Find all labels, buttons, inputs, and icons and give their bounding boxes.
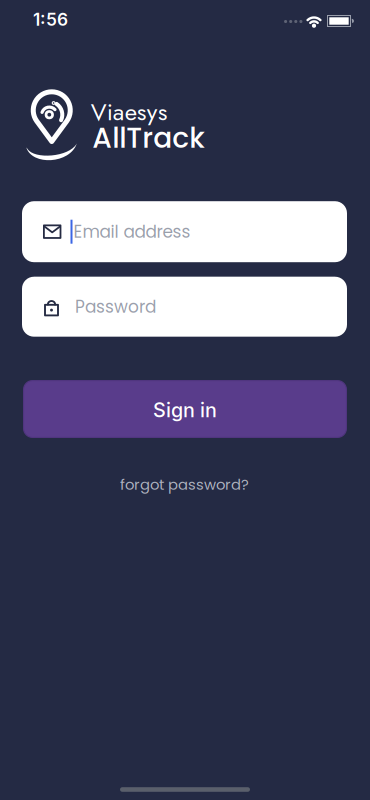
- button[interactable]: forgot password?: [120, 474, 249, 495]
- staticText: 1:56: [33, 9, 68, 30]
- staticText: forgot password?: [120, 474, 249, 495]
- button[interactable]: Password: [22, 277, 347, 337]
- staticText: Sign in: [153, 398, 217, 422]
- staticText: AllTrack: [92, 118, 205, 158]
- staticText: Email address: [73, 220, 190, 243]
- staticText: Viaesys: [91, 95, 168, 129]
- staticText: Password: [75, 295, 156, 318]
- button[interactable]: Email address: [22, 201, 347, 262]
- button[interactable]: Sign in: [23, 380, 347, 438]
